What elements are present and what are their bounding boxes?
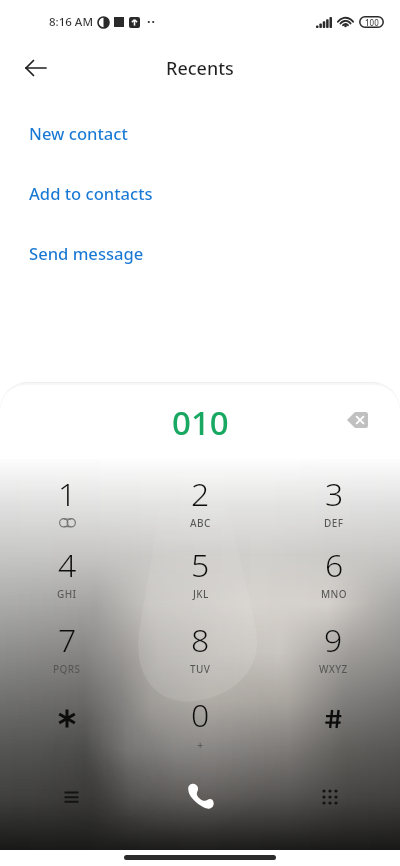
- button[interactable]: 7: [0, 609, 134, 684]
- staticText: 3: [325, 472, 344, 516]
- staticText: MNO: [321, 587, 347, 601]
- button[interactable]: New contact: [0, 103, 400, 163]
- button[interactable]: Add to contacts: [0, 163, 400, 223]
- staticText: New contact: [29, 122, 128, 145]
- staticText: 1: [58, 472, 77, 516]
- button[interactable]: 5: [134, 534, 267, 609]
- staticText: PQRS: [53, 662, 81, 676]
- staticText: DEF: [324, 516, 344, 530]
- button[interactable]: 4: [0, 534, 134, 609]
- staticText: JKL: [193, 587, 209, 601]
- staticText: 9: [324, 618, 343, 662]
- button[interactable]: 0: [134, 684, 267, 759]
- staticText: 4: [58, 543, 77, 587]
- staticText: 7: [58, 618, 77, 662]
- button[interactable]: 3: [267, 459, 400, 534]
- staticText: TUV: [190, 662, 211, 676]
- staticText: GHI: [57, 587, 77, 601]
- staticText: Send message: [29, 242, 144, 265]
- button[interactable]: 2: [134, 459, 267, 534]
- button[interactable]: [267, 684, 400, 759]
- button[interactable]: Send message: [0, 223, 400, 283]
- button[interactable]: Dialpad: [267, 759, 400, 850]
- staticText: 100: [365, 17, 379, 28]
- staticText: Recents: [166, 56, 234, 81]
- staticText: 010: [172, 400, 229, 445]
- staticText: 8:16 AM: [49, 14, 93, 30]
- staticText: 0: [191, 693, 210, 737]
- staticText: 2: [191, 472, 210, 516]
- button[interactable]: 8: [134, 609, 267, 684]
- staticText: ABC: [190, 516, 211, 530]
- staticText: 5: [191, 543, 210, 587]
- button[interactable]: Keyboard: [0, 759, 134, 850]
- button[interactable]: 1: [0, 459, 134, 534]
- button[interactable]: 6: [267, 534, 400, 609]
- staticText: 6: [325, 543, 344, 587]
- staticText: WXYZ: [319, 662, 348, 676]
- button[interactable]: Back: [16, 48, 56, 88]
- button[interactable]: [0, 684, 134, 759]
- button[interactable]: Backspace: [337, 402, 377, 442]
- staticText: Add to contacts: [29, 182, 153, 205]
- button[interactable]: 9: [267, 609, 400, 684]
- button[interactable]: Call: [134, 759, 267, 850]
- staticText: +: [197, 737, 204, 752]
- staticText: 8: [191, 618, 210, 662]
